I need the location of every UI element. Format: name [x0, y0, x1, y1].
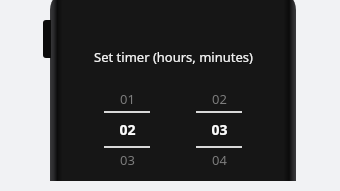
staticText: 02 — [212, 90, 227, 108]
staticText: 03 — [120, 151, 135, 169]
staticText: 04 — [212, 151, 227, 169]
staticText: 02 — [119, 120, 136, 139]
button[interactable]: 01 — [101, 90, 153, 169]
button[interactable]: Side button — [43, 20, 51, 58]
button[interactable]: 02 — [193, 90, 245, 169]
staticText: 03 — [211, 120, 228, 139]
staticText: 01 — [120, 90, 135, 108]
staticText: Set timer (hours, minutes) — [94, 48, 253, 66]
